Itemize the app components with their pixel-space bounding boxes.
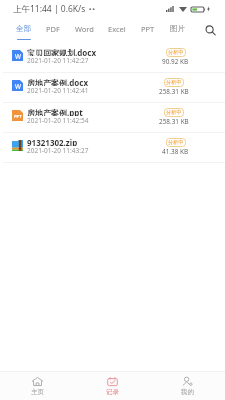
staticText: 房地产案例.ppt — [27, 107, 83, 116]
staticText: W — [15, 82, 21, 91]
staticText: PPT — [14, 114, 22, 120]
staticText: 主页 — [31, 388, 44, 396]
staticText: 上午11:44 | 0.6K/s — [13, 3, 86, 15]
staticText: 258.31 KB — [159, 87, 189, 96]
staticText: 全部 — [16, 24, 31, 33]
staticText: PPT — [141, 24, 155, 34]
staticText: Excel — [108, 24, 126, 34]
staticText: 2021-01-20 11:42:27 — [27, 56, 89, 63]
staticText: 90.92 KB — [162, 57, 189, 66]
button[interactable]: 91321302.zip — [0, 133, 225, 162]
button[interactable]: PPT — [0, 103, 225, 132]
button[interactable]: 全部 — [14, 18, 33, 40]
staticText: 分析中 — [168, 49, 184, 56]
button[interactable]: Word — [73, 18, 96, 40]
staticText: 91321302.zip — [27, 137, 78, 146]
staticText: 房地产案例.docx — [27, 77, 89, 86]
staticText: 分析中 — [168, 139, 184, 146]
staticText: W — [15, 52, 21, 61]
staticText: 分析中 — [166, 109, 182, 116]
button[interactable]: PPT — [139, 18, 157, 40]
button[interactable]: W — [0, 73, 225, 102]
button[interactable]: Excel — [106, 18, 128, 40]
button[interactable]: W — [0, 43, 225, 72]
staticText: 分析中 — [166, 79, 182, 86]
staticText: 记录 — [106, 388, 119, 396]
staticText: 2021-01-20 11:42:54 — [27, 116, 89, 123]
button[interactable]: 记录 — [75, 372, 150, 400]
staticText: 我的 — [181, 388, 194, 396]
button[interactable]: Search — [203, 23, 217, 37]
staticText: 图片 — [170, 24, 185, 33]
staticText: 2021-01-20 11:42:41 — [27, 86, 89, 93]
button[interactable]: 主页 — [0, 372, 75, 400]
staticText: PDF — [46, 24, 60, 34]
staticText: 宝贝回家规划.docx — [27, 47, 97, 56]
staticText: Word — [75, 24, 94, 34]
button[interactable]: 我的 — [150, 372, 225, 400]
staticText: 258.31 KB — [159, 117, 189, 126]
button[interactable]: 图片 — [168, 18, 187, 39]
button[interactable]: PDF — [44, 18, 62, 40]
staticText: 41.38 KB — [162, 147, 189, 156]
staticText: 2021-01-20 11:43:27 — [27, 146, 89, 153]
